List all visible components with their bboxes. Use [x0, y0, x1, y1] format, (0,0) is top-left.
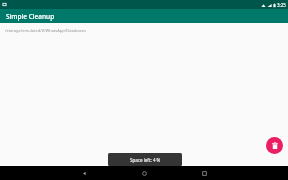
staticText: Space left: 4 % — [130, 157, 161, 163]
button[interactable]: Back — [75, 166, 93, 180]
button[interactable]: Delete files — [266, 137, 283, 154]
staticText: Simple Cleanup — [6, 12, 55, 21]
staticText: 3:25 — [277, 2, 286, 8]
staticText: /storage/emulated/0/WhatsApp/Databases — [5, 28, 86, 33]
button[interactable]: Recent apps — [195, 166, 213, 180]
button[interactable]: Home — [135, 166, 153, 180]
